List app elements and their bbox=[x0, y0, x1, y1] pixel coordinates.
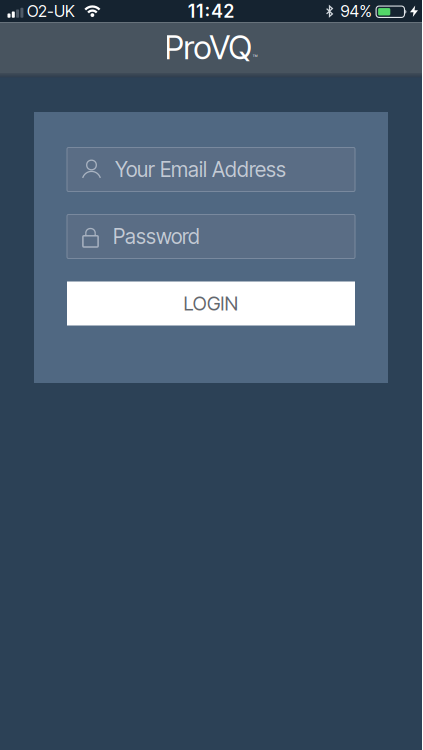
staticText: ProVQ bbox=[164, 27, 251, 67]
button[interactable]: Your Email Address bbox=[67, 147, 355, 191]
staticText: Password bbox=[113, 224, 200, 249]
button[interactable]: Password bbox=[67, 214, 355, 258]
staticText: Your Email Address bbox=[115, 157, 286, 182]
staticText: LOGIN bbox=[184, 292, 238, 315]
staticText: 11:42 bbox=[188, 0, 234, 22]
staticText: ™ bbox=[252, 52, 257, 63]
staticText: O2-UK bbox=[27, 2, 75, 21]
staticText: 94% bbox=[341, 2, 372, 21]
button[interactable]: LOGIN bbox=[67, 281, 355, 325]
